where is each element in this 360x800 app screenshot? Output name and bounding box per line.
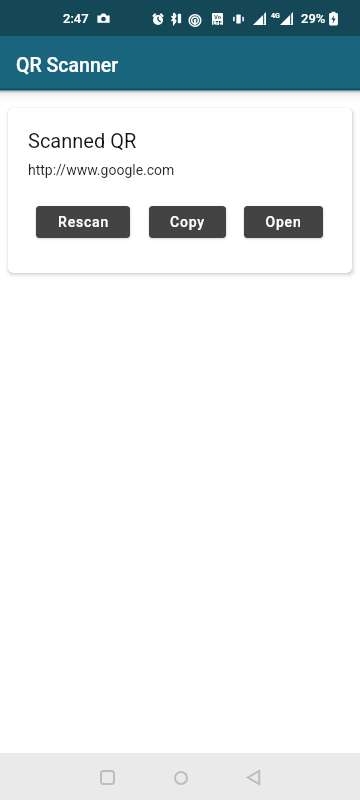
button[interactable]: Rescan — [36, 206, 130, 238]
button[interactable]: Copy — [149, 206, 226, 238]
staticText: http://www.google.com — [28, 162, 175, 178]
staticText: QR Scanner — [16, 54, 119, 77]
staticText: Vo — [214, 13, 222, 20]
staticText: 2:47 — [63, 11, 89, 26]
button[interactable]: Open — [244, 206, 323, 238]
button[interactable]: Home — [144, 753, 217, 800]
staticText: Copy — [170, 214, 205, 230]
button[interactable]: Back — [217, 753, 290, 800]
staticText: Rescan — [58, 214, 109, 230]
staticText: 29% — [301, 11, 326, 26]
staticText: LTE — [213, 20, 222, 25]
staticText: Scanned QR — [28, 129, 137, 152]
button[interactable]: Recent apps — [71, 753, 144, 800]
staticText: 4G — [271, 12, 280, 20]
staticText: Open — [265, 214, 302, 230]
